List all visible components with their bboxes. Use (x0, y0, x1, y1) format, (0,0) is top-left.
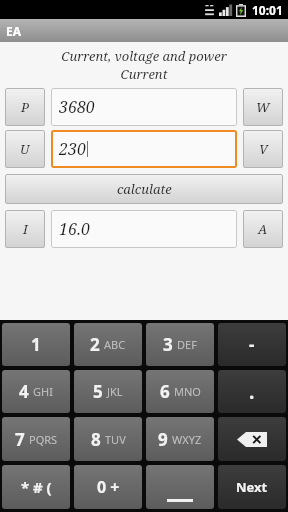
button[interactable]: V (243, 130, 283, 168)
staticText: Current (0, 65, 288, 83)
staticText: . (249, 379, 255, 405)
button[interactable]: 3680 (51, 88, 237, 126)
staticText: 3680 (59, 96, 95, 118)
button[interactable]: 230 (51, 130, 237, 168)
staticText: V (259, 140, 268, 158)
button[interactable]: U (5, 130, 45, 168)
staticText: 2 (90, 333, 100, 356)
staticText: 0 + (97, 476, 120, 498)
staticText: I (23, 220, 28, 238)
button[interactable]: 7 (2, 417, 70, 461)
staticText: 8 (91, 428, 101, 451)
button[interactable]: Backspace (218, 417, 286, 461)
button[interactable]: P (5, 88, 45, 126)
button[interactable]: 3 (146, 323, 214, 366)
staticText: GHI (33, 384, 53, 399)
staticText: A (258, 220, 268, 238)
button[interactable]: - (218, 323, 286, 366)
staticText: 230 (59, 138, 86, 160)
staticText: MNO (174, 384, 201, 399)
staticText: 3 (163, 333, 173, 356)
button[interactable]: 2 (74, 323, 142, 366)
staticText: P (21, 98, 30, 116)
staticText: * # ( (21, 477, 52, 497)
staticText: 5 (93, 380, 103, 403)
staticText: Current, voltage and power (0, 47, 288, 65)
staticText: WXYZ (172, 432, 202, 447)
button[interactable]: 8 (74, 417, 142, 461)
button[interactable]: EA (0, 19, 288, 42)
button[interactable]: calculate (5, 174, 283, 204)
button[interactable]: 1 (2, 323, 70, 366)
staticText: Next (236, 478, 268, 496)
button[interactable]: I (5, 210, 45, 248)
button[interactable]: 6 (146, 370, 214, 413)
staticText: U (20, 140, 30, 158)
button[interactable]: Space (146, 465, 214, 509)
button[interactable]: Period (218, 370, 286, 413)
button[interactable]: * # ( (2, 465, 70, 509)
staticText: 9 (158, 428, 168, 451)
button[interactable]: 4 (2, 370, 70, 413)
button[interactable]: Next (218, 465, 286, 509)
staticText: 6 (160, 380, 170, 403)
button[interactable]: 5 (74, 370, 142, 413)
staticText: calculate (117, 180, 172, 198)
button[interactable]: 9 (146, 417, 214, 461)
staticText: 7 (15, 428, 25, 451)
staticText: TUV (105, 432, 126, 447)
staticText: W (256, 98, 270, 116)
button[interactable]: 0 + (74, 465, 142, 509)
staticText: 4 (19, 380, 29, 403)
staticText: 16.0 (59, 218, 90, 240)
staticText: 10:01 (252, 2, 283, 18)
staticText: PQRS (29, 432, 58, 447)
staticText: ABC (104, 337, 126, 352)
button[interactable]: W (243, 88, 283, 126)
staticText: 1 (31, 333, 41, 356)
staticText: JKL (107, 384, 123, 399)
staticText: - (249, 333, 255, 356)
button[interactable]: A (243, 210, 283, 248)
staticText: DEF (177, 337, 197, 352)
button[interactable]: 16.0 (51, 210, 237, 248)
staticText: EA (6, 23, 22, 39)
